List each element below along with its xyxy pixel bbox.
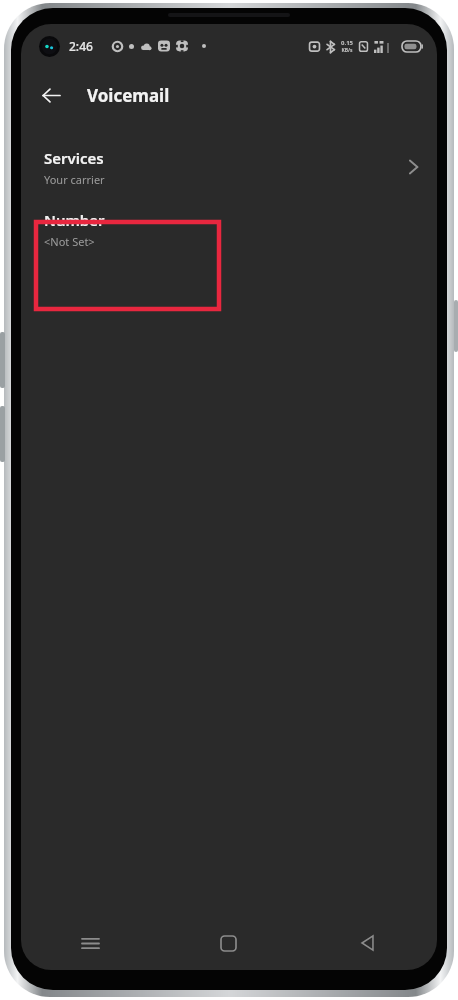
button[interactable]: Back — [30, 74, 72, 116]
button[interactable]: Services — [21, 140, 437, 194]
button[interactable]: Back — [298, 916, 437, 970]
staticText: Services — [44, 148, 104, 168]
staticText: 2:46 — [69, 38, 93, 54]
button[interactable]: Home — [159, 916, 298, 970]
staticText: KB/s — [341, 47, 353, 54]
button[interactable]: Number — [21, 202, 437, 256]
staticText: Number — [44, 210, 105, 230]
staticText: <Not Set> — [44, 234, 95, 249]
staticText: Your carrier — [44, 172, 105, 187]
staticText: Voicemail — [87, 84, 170, 107]
button[interactable]: Recent apps — [21, 916, 159, 970]
staticText: 0.15 — [341, 39, 353, 47]
